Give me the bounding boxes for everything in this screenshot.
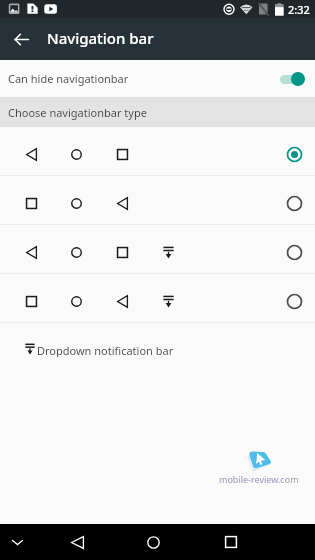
button[interactable]: Home bbox=[142, 531, 164, 553]
button[interactable]: Back bbox=[66, 531, 88, 553]
button[interactable]: Select layout bbox=[286, 195, 303, 212]
button[interactable]: Select layout bbox=[0, 176, 315, 224]
staticText: 2:32 bbox=[288, 2, 310, 17]
button[interactable]: Select layout bbox=[286, 293, 303, 310]
staticText: mobile-review.com bbox=[219, 473, 299, 485]
button[interactable]: Hide navigation bar bbox=[6, 531, 28, 553]
button[interactable]: Select layout bbox=[0, 274, 315, 322]
button[interactable]: Select layout bbox=[0, 127, 315, 175]
button[interactable]: Dropdown notification bar bbox=[0, 342, 315, 356]
staticText: Choose navigationbar type bbox=[8, 105, 147, 120]
button[interactable]: Select layout bbox=[0, 225, 315, 273]
button[interactable]: Select layout bbox=[286, 146, 303, 163]
button[interactable]: Select layout bbox=[286, 244, 303, 261]
staticText: Navigation bar bbox=[47, 28, 154, 48]
staticText: Can hide navigationbar bbox=[8, 71, 129, 86]
button[interactable]: Back bbox=[0, 18, 42, 60]
button[interactable]: Can hide navigationbar bbox=[0, 60, 315, 97]
button[interactable]: Recent apps bbox=[220, 531, 242, 553]
staticText: Dropdown notification bar bbox=[37, 343, 174, 357]
